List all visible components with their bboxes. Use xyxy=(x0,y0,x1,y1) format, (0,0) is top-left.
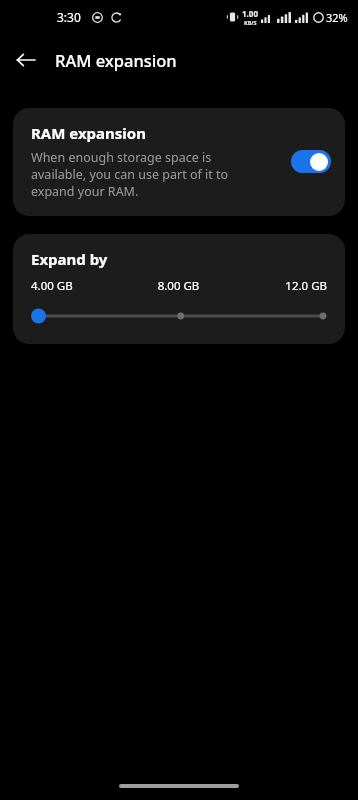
staticText: 3:30 xyxy=(57,9,81,25)
staticText: KB/S xyxy=(244,19,257,26)
staticText: RAM expansion xyxy=(55,49,177,71)
button[interactable]: Expand by slider, 4.00 GB xyxy=(31,306,327,326)
staticText: 12.0 GB xyxy=(228,278,327,294)
staticText: 1.00 xyxy=(242,8,258,19)
staticText: 32% xyxy=(326,10,348,25)
button[interactable]: RAM expansion xyxy=(13,108,345,216)
button[interactable]: Back xyxy=(6,40,46,80)
button[interactable]: RAM expansion toggle, on xyxy=(291,150,331,173)
staticText: 8.00 GB xyxy=(129,278,228,294)
staticText: 4.00 GB xyxy=(31,278,129,294)
staticText: RAM expansion xyxy=(31,123,146,143)
staticText: When enough storage space is available, … xyxy=(31,149,229,200)
staticText: Expand by xyxy=(31,249,108,269)
